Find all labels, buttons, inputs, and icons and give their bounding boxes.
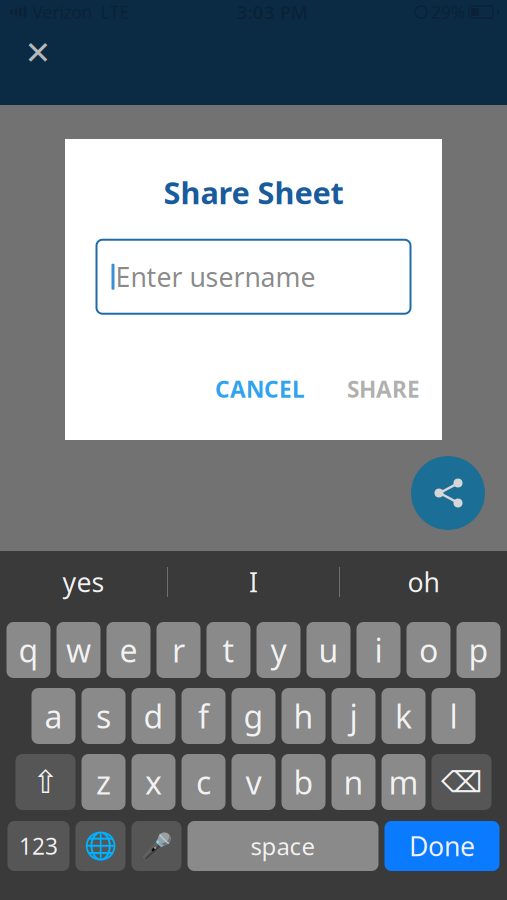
- staticText: k: [395, 695, 412, 737]
- button[interactable]: Close: [10, 25, 66, 81]
- button[interactable]: e: [106, 622, 150, 678]
- staticText: z: [96, 761, 111, 803]
- staticText: p: [468, 629, 488, 671]
- button[interactable]: Shift: [15, 754, 75, 810]
- button[interactable]: k: [381, 688, 425, 744]
- staticText: e: [119, 629, 137, 671]
- staticText: oh: [407, 564, 439, 600]
- staticText: 🎤: [140, 831, 172, 860]
- staticText: ⇧: [32, 764, 59, 800]
- button[interactable]: CANCEL: [205, 366, 315, 412]
- staticText: h: [293, 695, 313, 737]
- staticText: f: [198, 695, 209, 737]
- staticText: i: [374, 629, 382, 671]
- button[interactable]: Next keyboard: [75, 821, 125, 871]
- button[interactable]: y: [256, 622, 300, 678]
- staticText: v: [245, 761, 261, 803]
- button[interactable]: c: [181, 754, 225, 810]
- staticText: Share Sheet: [163, 172, 343, 213]
- button[interactable]: j: [331, 688, 375, 744]
- staticText: space: [250, 830, 315, 862]
- staticText: Verizon: [32, 0, 92, 23]
- staticText: g: [243, 695, 263, 737]
- staticText: 29%: [431, 0, 465, 23]
- button[interactable]: 123: [7, 821, 69, 871]
- button[interactable]: yes: [0, 551, 167, 613]
- staticText: n: [343, 761, 363, 803]
- staticText: a: [44, 695, 62, 737]
- button[interactable]: d: [131, 688, 175, 744]
- button[interactable]: o: [406, 622, 450, 678]
- staticText: m: [388, 761, 418, 803]
- button[interactable]: Done: [384, 821, 499, 871]
- staticText: Done: [409, 828, 475, 864]
- button[interactable]: w: [56, 622, 100, 678]
- button[interactable]: l: [431, 688, 475, 744]
- button[interactable]: f: [181, 688, 225, 744]
- button[interactable]: Delete: [431, 754, 491, 810]
- button[interactable]: oh: [340, 551, 507, 613]
- button[interactable]: v: [231, 754, 275, 810]
- button[interactable]: i: [356, 622, 400, 678]
- button[interactable]: t: [206, 622, 250, 678]
- button[interactable]: n: [331, 754, 375, 810]
- button[interactable]: q: [6, 622, 50, 678]
- staticText: y: [270, 629, 286, 671]
- button[interactable]: u: [306, 622, 350, 678]
- button[interactable]: z: [81, 754, 125, 810]
- button[interactable]: Enter username: [96, 240, 410, 314]
- staticText: q: [18, 629, 38, 671]
- staticText: 🌐: [84, 831, 117, 861]
- button[interactable]: m: [381, 754, 425, 810]
- button[interactable]: x: [131, 754, 175, 810]
- staticText: 3:03 PM: [237, 0, 308, 24]
- staticText: d: [143, 695, 163, 737]
- staticText: I: [249, 564, 258, 600]
- button[interactable]: p: [456, 622, 500, 678]
- button[interactable]: Share: [411, 456, 485, 530]
- button[interactable]: r: [156, 622, 200, 678]
- button[interactable]: space: [187, 821, 378, 871]
- staticText: r: [172, 629, 185, 671]
- staticText: yes: [62, 564, 104, 600]
- staticText: LTE: [100, 0, 129, 23]
- staticText: ✕: [24, 35, 51, 71]
- button[interactable]: g: [231, 688, 275, 744]
- staticText: ⌫: [441, 765, 482, 799]
- staticText: l: [449, 695, 457, 737]
- staticText: x: [145, 761, 162, 803]
- staticText: s: [96, 695, 111, 737]
- staticText: o: [419, 629, 438, 671]
- button[interactable]: h: [281, 688, 325, 744]
- staticText: SHARE: [347, 374, 420, 404]
- staticText: Enter username: [115, 259, 315, 294]
- staticText: b: [293, 761, 313, 803]
- button[interactable]: Dictate: [131, 821, 181, 871]
- staticText: c: [196, 761, 211, 803]
- staticText: CANCEL: [215, 374, 305, 404]
- button[interactable]: I: [168, 551, 339, 613]
- staticText: w: [66, 629, 91, 671]
- staticText: j: [349, 695, 357, 737]
- button[interactable]: a: [31, 688, 75, 744]
- button[interactable]: s: [81, 688, 125, 744]
- staticText: 123: [19, 831, 58, 861]
- staticText: u: [318, 629, 338, 671]
- button[interactable]: SHARE: [337, 366, 430, 412]
- button[interactable]: b: [281, 754, 325, 810]
- staticText: t: [222, 629, 234, 671]
